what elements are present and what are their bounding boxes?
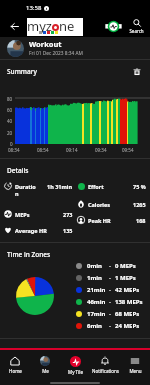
staticText: Workout	[29, 39, 62, 49]
button[interactable]: Notifications	[90, 350, 120, 380]
staticText: 80	[7, 96, 13, 102]
staticText: 0 MEPs	[115, 262, 136, 270]
staticText: Menu	[129, 368, 142, 374]
staticText: 1 MEPs	[115, 274, 136, 282]
staticText: 24 MEPs	[115, 322, 140, 330]
button[interactable]: My status badge	[103, 16, 123, 37]
staticText: -	[109, 298, 111, 306]
staticText: -	[109, 310, 111, 318]
staticText: Calories	[88, 201, 111, 208]
staticText: Fri 01 Dec 2023 8:34 AM	[29, 50, 83, 57]
staticText: Average HR	[15, 227, 47, 234]
staticText: 09:14	[66, 147, 78, 153]
staticText: 1h 31min	[47, 183, 73, 190]
staticText: 68 MEPs	[115, 310, 140, 318]
staticText: 20	[7, 130, 13, 136]
staticText: myz	[27, 17, 52, 35]
staticText: 75 %	[133, 183, 146, 190]
staticText: Time in Zones	[7, 250, 51, 259]
staticText: 138 MEPs	[115, 298, 143, 306]
staticText: 08:54	[37, 147, 49, 153]
staticText: -	[109, 262, 111, 270]
staticText: -	[109, 322, 111, 330]
staticText: 17min	[87, 310, 106, 318]
button[interactable]: Menu	[120, 350, 150, 380]
staticText: Effort	[88, 183, 104, 190]
button[interactable]: Me	[30, 350, 60, 380]
button[interactable]: Delete workout	[130, 65, 144, 79]
staticText: 135	[63, 227, 73, 234]
staticText: 13:58	[26, 4, 42, 12]
staticText: MEPs	[15, 211, 30, 218]
staticText: Peak HR	[88, 217, 111, 224]
staticText: 09:34	[95, 147, 107, 153]
button[interactable]: My Tile	[60, 350, 90, 380]
staticText: 0min	[87, 262, 102, 270]
staticText: Me	[42, 368, 49, 374]
staticText: 273	[63, 211, 73, 218]
staticText: Duration	[15, 183, 36, 197]
button[interactable]: Home	[0, 350, 30, 380]
staticText: 0	[10, 141, 13, 147]
staticText: 6min	[87, 322, 102, 330]
staticText: 168	[136, 217, 146, 224]
staticText: 21min	[87, 286, 106, 294]
staticText: -	[109, 274, 111, 282]
staticText: 1265	[133, 201, 146, 208]
staticText: Search	[129, 28, 144, 34]
staticText: Summary	[7, 67, 37, 76]
staticText: 08:34	[8, 147, 20, 153]
staticText: 46min	[87, 298, 106, 306]
staticText: 1min	[87, 274, 102, 282]
staticText: Details	[7, 166, 29, 175]
staticText: ne	[59, 17, 75, 35]
button[interactable]: Back	[0, 16, 28, 37]
staticText: My Tile	[68, 369, 83, 375]
staticText: -	[109, 286, 111, 294]
staticText: 60	[7, 107, 13, 113]
staticText: 09:54	[122, 147, 134, 153]
staticText: 40	[7, 118, 13, 124]
button[interactable]: Search	[123, 16, 150, 37]
staticText: Home	[9, 368, 22, 374]
staticText: Notifications	[92, 368, 119, 374]
staticText: 42 MEPs	[115, 286, 140, 294]
